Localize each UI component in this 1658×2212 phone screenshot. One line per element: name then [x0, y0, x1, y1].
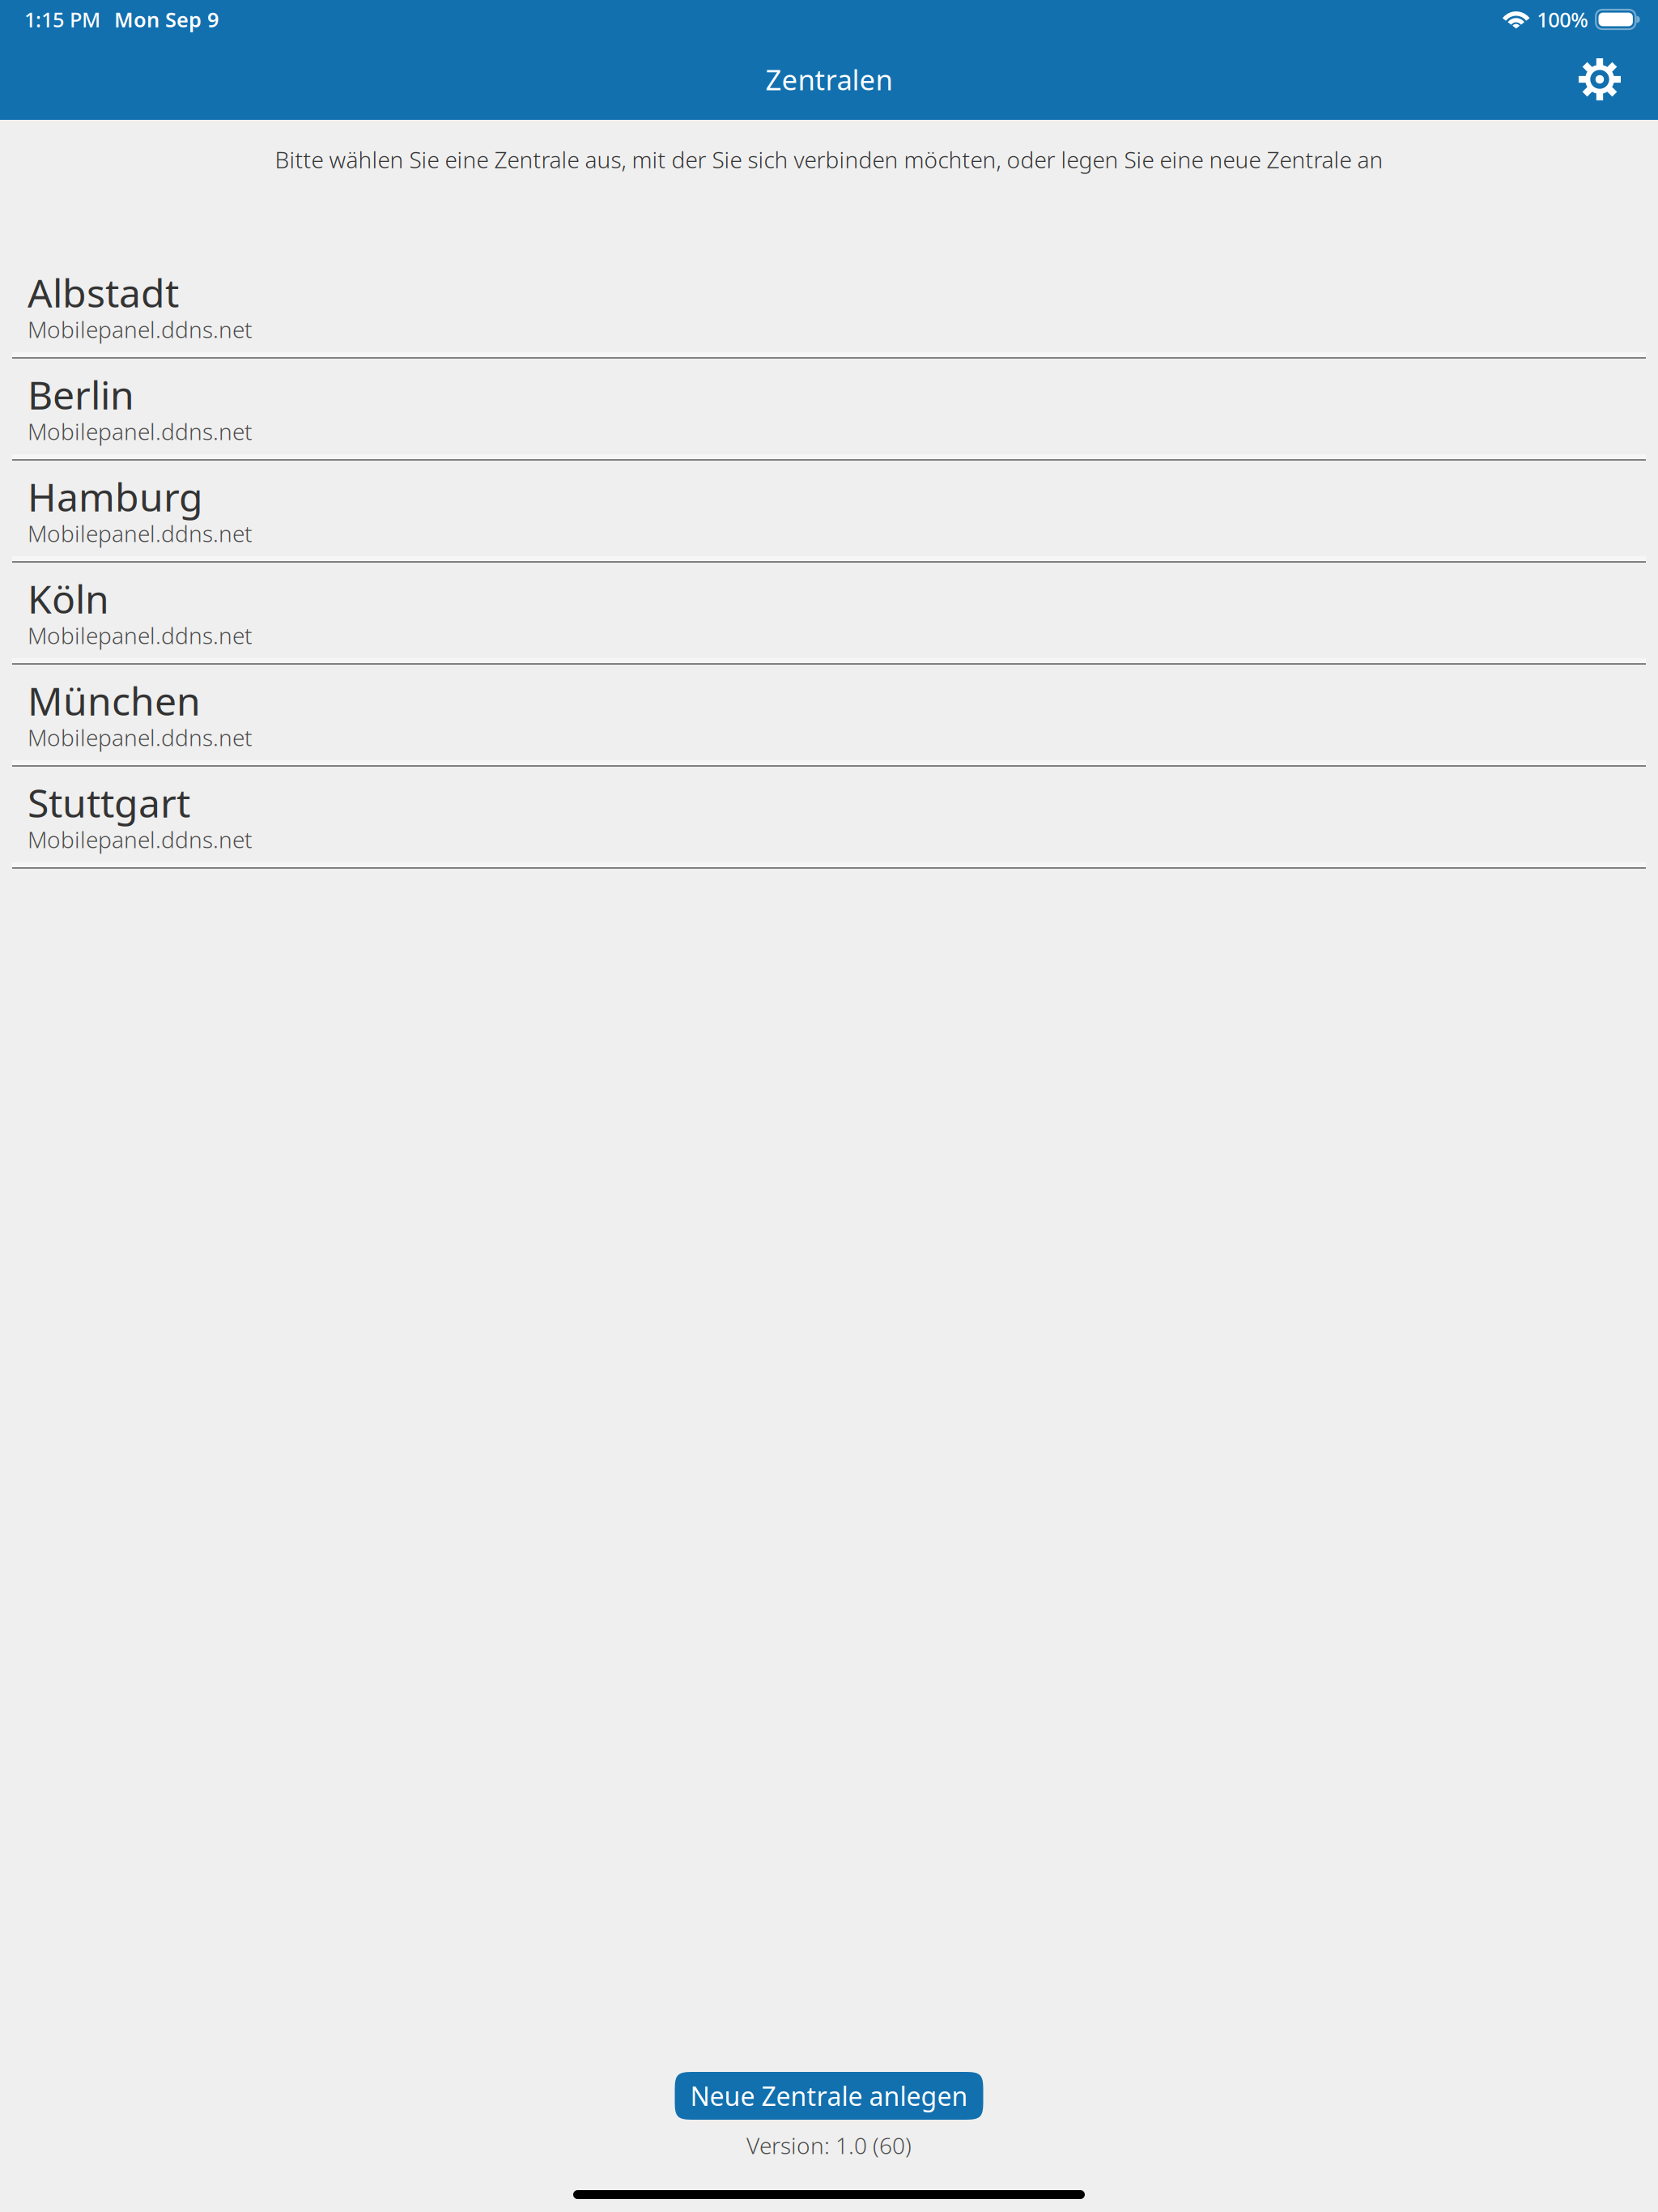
staticText: Version: 1.0 (60) — [746, 2130, 912, 2160]
staticText: Stuttgart — [28, 777, 190, 828]
staticText: Mobilepanel.ddns.net — [28, 722, 253, 752]
staticText: Mobilepanel.ddns.net — [28, 314, 253, 344]
staticText: 100% — [1537, 6, 1589, 33]
button[interactable]: Köln — [0, 563, 1658, 665]
button[interactable]: Settings — [1564, 44, 1635, 115]
staticText: 1:15 PM — [24, 6, 100, 33]
button[interactable]: Neue Zentrale anlegen — [675, 2072, 983, 2120]
staticText: Hamburg — [28, 471, 203, 522]
staticText: Berlin — [28, 369, 134, 420]
staticText: München — [28, 675, 201, 726]
staticText: Mobilepanel.ddns.net — [28, 824, 253, 854]
staticText: Bitte wählen Sie eine Zentrale aus, mit … — [275, 144, 1383, 175]
staticText: Mon Sep 9 — [114, 6, 219, 33]
staticText: Neue Zentrale anlegen — [690, 2079, 968, 2113]
staticText: Mobilepanel.ddns.net — [28, 518, 253, 548]
staticText: Albstadt — [28, 267, 179, 318]
staticText: Zentralen — [765, 61, 893, 98]
staticText: Mobilepanel.ddns.net — [28, 620, 253, 650]
button[interactable]: Stuttgart — [0, 767, 1658, 869]
staticText: Mobilepanel.ddns.net — [28, 416, 253, 446]
button[interactable]: Albstadt — [0, 257, 1658, 359]
button[interactable]: Hamburg — [0, 461, 1658, 563]
button[interactable]: Berlin — [0, 359, 1658, 461]
button[interactable]: München — [0, 665, 1658, 767]
staticText: Köln — [28, 573, 109, 624]
